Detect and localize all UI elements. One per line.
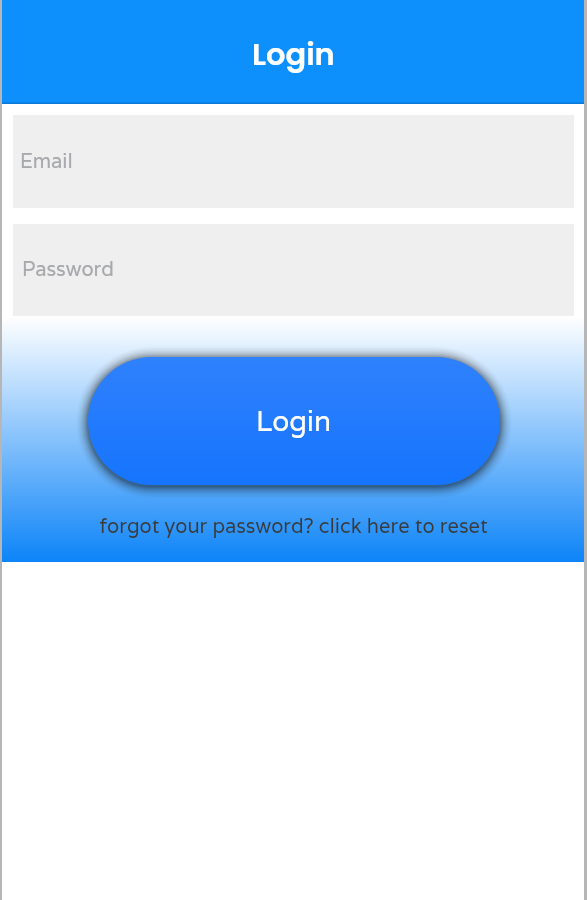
staticText: Login [252,33,335,76]
button[interactable]: Login [0,0,587,104]
button[interactable]: Login [88,357,500,485]
staticText: Email [20,148,73,174]
button[interactable]: Password [13,224,574,316]
button[interactable]: forgot your password? click here to rese… [99,513,488,539]
button[interactable]: Email [13,115,574,208]
staticText: Login [256,403,332,439]
staticText: Password [22,256,114,282]
